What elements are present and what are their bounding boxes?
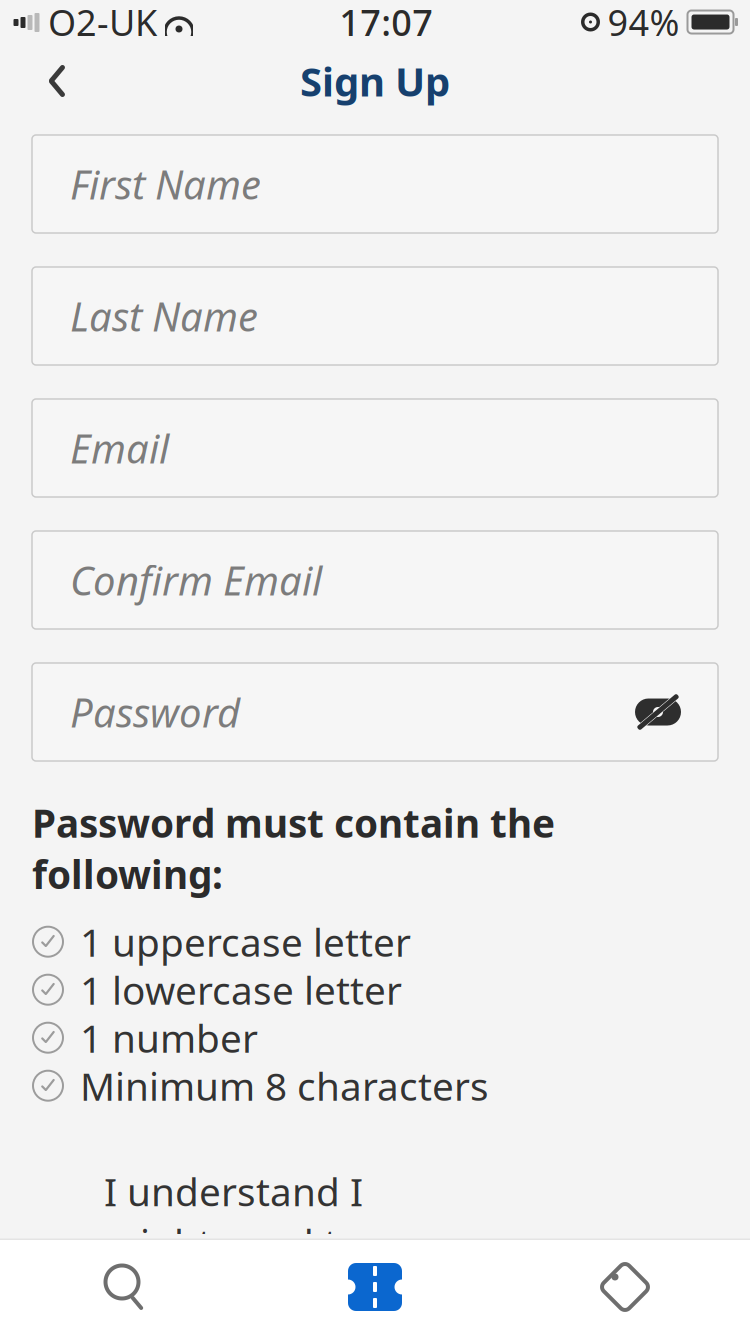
- button[interactable]: First Name: [32, 135, 718, 233]
- staticText: Last Name: [70, 289, 258, 342]
- staticText: Minimum 8 characters: [80, 1060, 489, 1111]
- button[interactable]: My Tickets: [250, 1240, 500, 1334]
- staticText: Sign Up: [300, 54, 450, 107]
- button[interactable]: Confirm Email: [32, 531, 718, 629]
- staticText: Confirm Email: [70, 553, 322, 606]
- staticText: Password: [70, 685, 240, 738]
- staticText: O2-UK: [48, 0, 157, 46]
- staticText: 94%: [607, 0, 679, 46]
- button[interactable]: Back: [26, 50, 88, 112]
- button[interactable]: Email: [32, 399, 718, 497]
- button[interactable]: Password: [32, 663, 718, 761]
- staticText: Email: [70, 421, 169, 474]
- button[interactable]: Search: [0, 1240, 250, 1334]
- button[interactable]: Last Name: [32, 267, 718, 365]
- staticText: 1 number: [80, 1012, 258, 1063]
- staticText: 17:07: [339, 0, 433, 46]
- staticText: 1 lowercase letter: [80, 964, 402, 1015]
- staticText: First Name: [70, 157, 261, 210]
- staticText: Password must contain the following:: [32, 797, 555, 900]
- button[interactable]: I understand I might need to show: [0, 1110, 750, 1276]
- button[interactable]: Offers: [500, 1240, 750, 1334]
- staticText: 1 uppercase letter: [80, 916, 411, 967]
- staticText: I understand I might need to show: [104, 1166, 363, 1320]
